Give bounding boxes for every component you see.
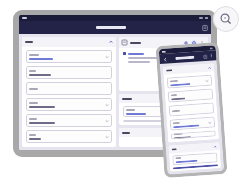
button[interactable] (26, 50, 112, 63)
button[interactable]: Collapse (171, 142, 217, 153)
button[interactable] (172, 152, 218, 165)
button[interactable]: Action (183, 40, 189, 46)
button[interactable]: Zoom (213, 6, 239, 32)
other: Collapse (109, 40, 113, 44)
button[interactable] (26, 114, 112, 127)
button[interactable]: Save (202, 54, 207, 59)
button[interactable] (26, 98, 112, 111)
button[interactable] (171, 130, 216, 139)
button[interactable] (170, 116, 215, 130)
button[interactable]: Collapse (25, 37, 113, 47)
button[interactable] (168, 88, 213, 103)
button[interactable] (123, 120, 204, 122)
button[interactable]: App menu (201, 24, 208, 31)
button[interactable] (26, 130, 112, 143)
button[interactable] (26, 82, 112, 95)
button[interactable] (169, 102, 214, 116)
button[interactable] (167, 74, 212, 89)
button[interactable]: More options (209, 53, 213, 58)
other: Collapse (213, 145, 217, 148)
button[interactable]: Action (191, 40, 197, 46)
button[interactable] (26, 66, 112, 79)
button[interactable]: Back (162, 57, 167, 62)
button[interactable] (123, 106, 204, 117)
other: Collapse (208, 66, 211, 70)
button[interactable] (173, 164, 218, 169)
button[interactable]: Collapse (166, 63, 211, 75)
button[interactable]: Action (199, 40, 205, 46)
